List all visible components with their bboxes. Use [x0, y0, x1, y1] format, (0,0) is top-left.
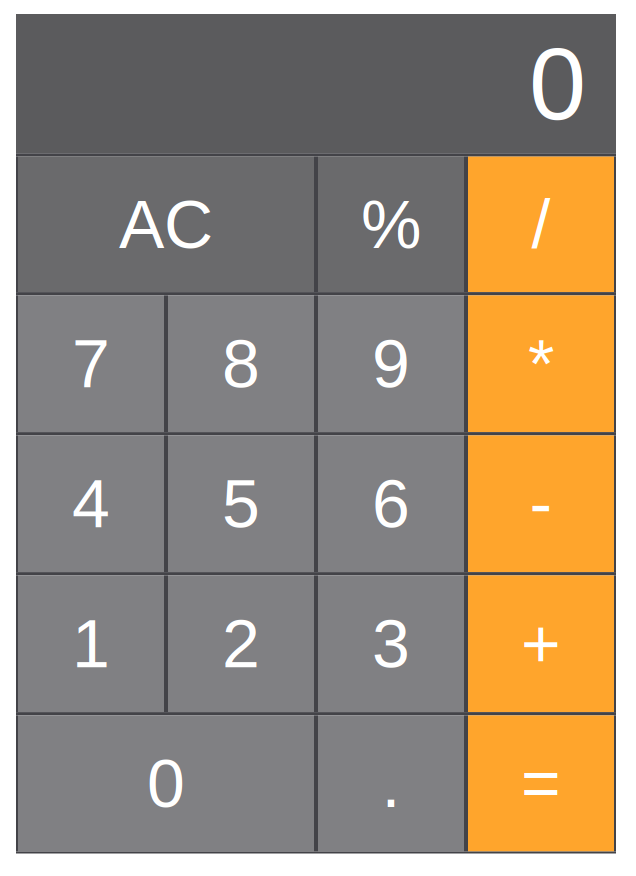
- staticText: /: [531, 186, 550, 262]
- staticText: -: [529, 466, 552, 542]
- staticText: =: [521, 745, 561, 821]
- button[interactable]: 8: [168, 295, 314, 432]
- button[interactable]: Equals: [468, 715, 614, 851]
- staticText: 9: [372, 326, 410, 402]
- button[interactable]: 9: [318, 295, 464, 432]
- staticText: 0: [529, 26, 586, 141]
- staticText: .: [381, 745, 400, 821]
- button[interactable]: 4: [18, 435, 164, 572]
- button[interactable]: 3: [318, 575, 464, 712]
- staticText: 4: [72, 466, 110, 542]
- staticText: +: [521, 606, 561, 682]
- staticText: 6: [372, 466, 410, 542]
- button[interactable]: 6: [318, 435, 464, 572]
- button[interactable]: 1: [18, 575, 164, 712]
- button[interactable]: 7: [18, 295, 164, 432]
- button[interactable]: All clear: [18, 157, 314, 292]
- staticText: *: [528, 326, 554, 402]
- staticText: 2: [222, 606, 260, 682]
- staticText: 3: [372, 606, 410, 682]
- staticText: 8: [222, 326, 260, 402]
- staticText: 7: [72, 326, 110, 402]
- button[interactable]: Decimal point: [318, 715, 464, 851]
- button[interactable]: Add: [468, 575, 614, 712]
- staticText: AC: [119, 186, 213, 262]
- staticText: %: [361, 186, 421, 262]
- button[interactable]: Subtract: [468, 435, 614, 572]
- button[interactable]: 5: [168, 435, 314, 572]
- button[interactable]: Divide: [468, 157, 614, 292]
- staticText: 0: [147, 745, 185, 821]
- staticText: 5: [222, 466, 260, 542]
- button[interactable]: Percent: [318, 157, 464, 292]
- button[interactable]: 0: [18, 715, 314, 851]
- button[interactable]: Multiply: [468, 295, 614, 432]
- button[interactable]: 2: [168, 575, 314, 712]
- staticText: 1: [72, 606, 110, 682]
